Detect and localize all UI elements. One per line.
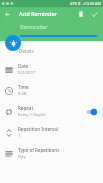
- staticText: Time: [18, 84, 29, 90]
- staticText: Type of Repetitions: [18, 147, 60, 153]
- staticText: Add Reminder: [19, 10, 58, 18]
- button[interactable]: Date: [0, 59, 103, 80]
- staticText: Date: [18, 63, 29, 69]
- button[interactable]: Back: [0, 7, 14, 21]
- staticText: Every 1 Day(s): [18, 112, 46, 118]
- button[interactable]: Repetition Interval: [0, 122, 103, 143]
- staticText: Reminder: [20, 23, 48, 31]
- staticText: Day: [18, 154, 26, 160]
- staticText: 47%: [70, 1, 78, 6]
- staticText: Details: [19, 48, 34, 54]
- button[interactable]: Repeat: [0, 101, 103, 122]
- staticText: Repeat: [18, 105, 34, 111]
- button[interactable]: Type of Repetitions: [0, 143, 103, 164]
- staticText: 1: [18, 133, 21, 139]
- button[interactable]: Time: [0, 80, 103, 101]
- staticText: Repetition Interval: [18, 126, 59, 132]
- button[interactable]: Toggle repeat: [86, 107, 98, 117]
- staticText: 12:38 AM: [85, 1, 101, 6]
- button[interactable]: Save: [88, 8, 100, 20]
- staticText: 0:38: [18, 91, 27, 97]
- button[interactable]: Reminder type: [5, 35, 21, 51]
- staticText: 5/2/2017: [18, 70, 36, 76]
- button[interactable]: Delete: [75, 8, 87, 20]
